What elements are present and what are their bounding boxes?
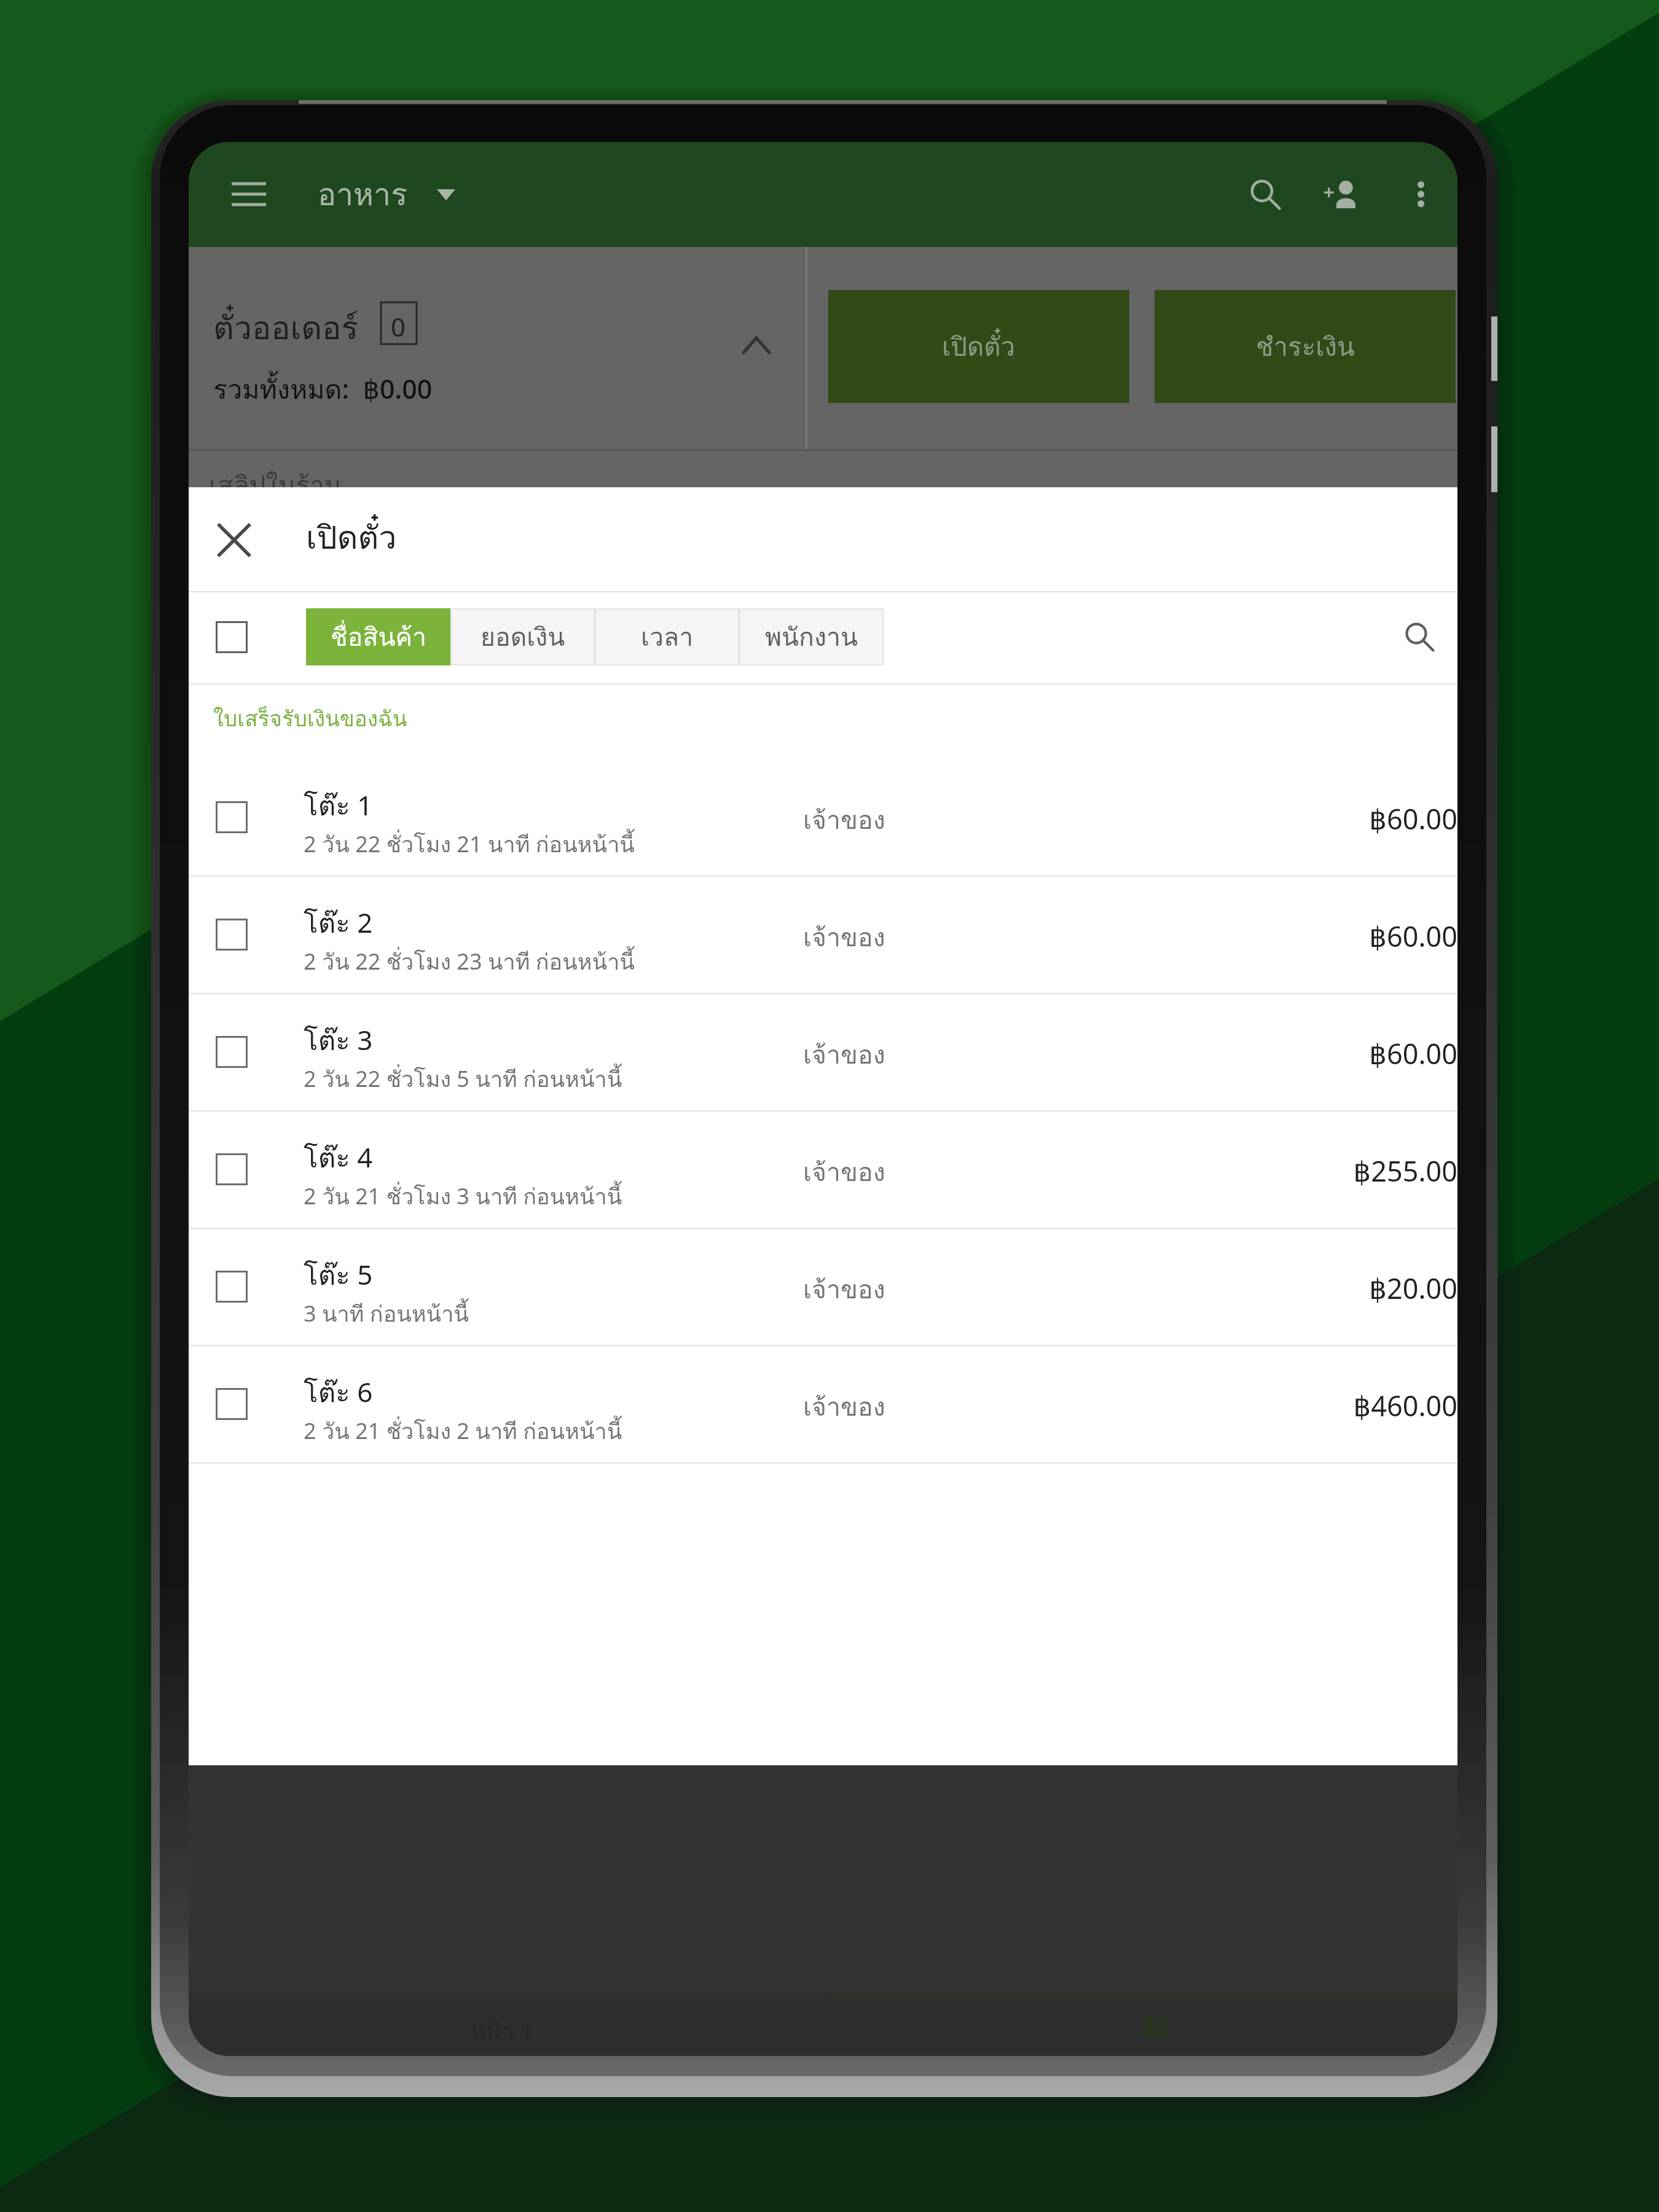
button[interactable]: Select โต๊ะ 2: [189, 876, 1457, 993]
button[interactable]: เปิดตั๋ว: [828, 290, 1129, 403]
staticText: โต๊ะ 1: [304, 784, 373, 827]
staticText: ชื่อสินค้า: [331, 617, 426, 657]
staticText: 2 วัน 21 ชั่วโมง 2 นาที ก่อนหน้านี้: [304, 1414, 622, 1449]
staticText: ฿60.00: [1155, 1035, 1457, 1072]
staticText: โต๊ะ 4: [304, 1136, 373, 1179]
staticText: รวมทั้งหมด: ฿0.00: [213, 369, 433, 410]
button[interactable]: Search receipts: [1397, 614, 1441, 659]
staticText: ชำระเงิน: [1256, 326, 1355, 367]
staticText: ฿20.00: [1155, 1269, 1457, 1307]
button[interactable]: เวลา: [595, 608, 739, 665]
staticText: โต๊ะ 3: [304, 1019, 373, 1062]
staticText: 2 วัน 22 ชั่วโมง 23 นาที ก่อนหน้านี้: [304, 944, 635, 979]
button[interactable]: ยอดเงิน: [450, 608, 595, 665]
button[interactable]: Select โต๊ะ 4: [216, 1153, 248, 1185]
staticText: เจ้าของ: [803, 800, 885, 840]
button[interactable]: Select โต๊ะ 2: [216, 919, 248, 951]
button[interactable]: Add customer: [1310, 163, 1371, 225]
staticText: เจ้าของ: [803, 1387, 885, 1427]
staticText: เสลิปในร้าน: [209, 465, 342, 506]
staticText: เจ้าของ: [803, 917, 885, 957]
button[interactable]: Select โต๊ะ 1: [216, 801, 248, 833]
staticText: ฿255.00: [1155, 1152, 1457, 1190]
button[interactable]: Select โต๊ะ 6: [189, 1345, 1457, 1462]
button[interactable]: Menu: [218, 163, 280, 225]
button[interactable]: Select โต๊ะ 6: [216, 1388, 248, 1420]
staticText: ยอดเงิน: [480, 617, 565, 657]
staticText: โต๊ะ 6: [304, 1371, 373, 1414]
button[interactable]: Select โต๊ะ 5: [216, 1271, 248, 1303]
staticText: โต๊ะ 5: [304, 1253, 373, 1296]
button[interactable]: Select โต๊ะ 4: [189, 1110, 1457, 1228]
button[interactable]: Select โต๊ะ 1: [189, 758, 1457, 876]
staticText: เปิดตั๋ว: [306, 512, 397, 563]
button[interactable]: Select โต๊ะ 5: [189, 1228, 1457, 1345]
staticText: 0: [391, 309, 406, 344]
staticText: อาหาร: [318, 170, 407, 219]
staticText: ใบเสร็จรับเงินของฉัน: [213, 702, 407, 736]
staticText: ฿460.00: [1155, 1387, 1457, 1424]
button[interactable]: พนักงาน: [739, 608, 884, 665]
button[interactable]: Select โต๊ะ 3: [189, 993, 1457, 1110]
button[interactable]: อาหาร: [318, 142, 455, 247]
button[interactable]: Search: [1234, 163, 1296, 225]
staticText: เจ้าของ: [803, 1035, 885, 1075]
staticText: 2 วัน 21 ชั่วโมง 3 นาที ก่อนหน้านี้: [304, 1179, 622, 1214]
staticText: 2 วัน 22 ชั่วโมง 5 นาที ก่อนหน้านี้: [304, 1062, 622, 1097]
staticText: ตั๋วออเดอร์: [213, 302, 359, 353]
button[interactable]: Select all: [216, 621, 248, 653]
staticText: ฿60.00: [1155, 800, 1457, 837]
staticText: เจ้าของ: [803, 1152, 885, 1192]
staticText: 2 วัน 22 ชั่วโมง 21 นาที ก่อนหน้านี้: [304, 827, 635, 862]
button[interactable]: More options: [1390, 163, 1451, 225]
staticText: เจ้าของ: [803, 1269, 885, 1309]
button[interactable]: Select โต๊ะ 3: [216, 1036, 248, 1068]
staticText: เวลา: [641, 617, 694, 657]
staticText: 3 นาที ก่อนหน้านี้: [304, 1296, 469, 1332]
staticText: โต๊ะ 2: [304, 901, 373, 944]
staticText: เปิดตั๋ว: [942, 326, 1016, 367]
staticText: ฿60.00: [1155, 917, 1457, 955]
button[interactable]: Close: [206, 512, 262, 568]
staticText: พนักงาน: [765, 617, 858, 657]
button[interactable]: ชื่อสินค้า: [306, 608, 450, 665]
button[interactable]: ชำระเงิน: [1155, 290, 1456, 403]
